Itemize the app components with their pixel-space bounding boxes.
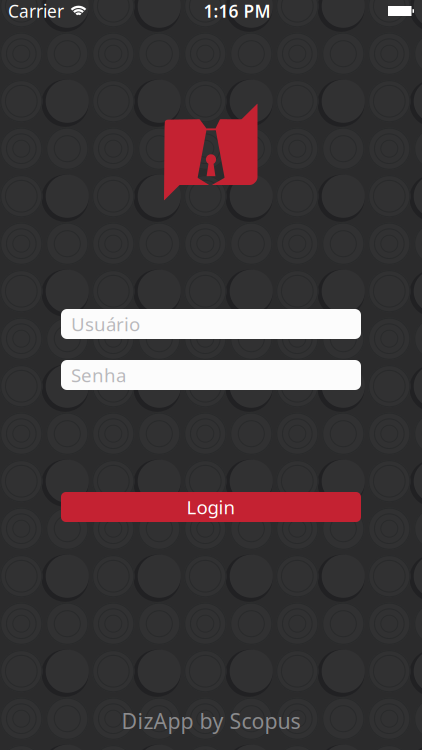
staticText: Login [186, 495, 235, 519]
staticText: Usuário [71, 312, 140, 336]
staticText: Senha [71, 363, 126, 387]
staticText: Carrier [8, 0, 64, 22]
staticText: DizApp by Scopus [121, 707, 300, 735]
button[interactable]: Login [61, 492, 361, 522]
staticText: 1:16 PM [203, 0, 270, 22]
